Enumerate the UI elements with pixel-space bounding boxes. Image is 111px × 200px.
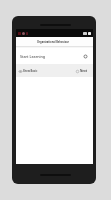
staticText: Show Basic xyxy=(23,69,38,73)
staticText: Next xyxy=(80,69,87,73)
staticText: Organizational Behaviour xyxy=(37,40,69,43)
button[interactable]: Organizational Behaviour xyxy=(16,37,93,46)
button[interactable]: Next xyxy=(74,69,93,73)
button[interactable]: Show Basic xyxy=(16,69,40,73)
staticText: Start Learning xyxy=(20,54,46,59)
button[interactable]: More options xyxy=(83,54,88,59)
button[interactable]: Start Learning xyxy=(16,48,93,64)
